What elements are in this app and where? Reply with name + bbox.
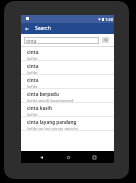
button[interactable]: cinta bbox=[21, 75, 114, 88]
staticText: cinta bbox=[27, 63, 39, 69]
button[interactable]: Back bbox=[35, 151, 47, 163]
staticText: cinta berpadu bbox=[27, 91, 59, 97]
staticText: cinta bbox=[26, 38, 37, 44]
staticText: liefde op het eerste gezicht bbox=[27, 126, 78, 130]
staticText: cinta bbox=[27, 77, 39, 83]
button[interactable]: cinta bbox=[24, 37, 99, 44]
staticText: cinta layang pandang bbox=[27, 119, 77, 125]
staticText: liefde bbox=[27, 70, 38, 74]
button[interactable]: Recent apps bbox=[88, 151, 100, 163]
staticText: cinta bbox=[27, 49, 39, 55]
staticText: Search bbox=[35, 25, 51, 32]
button[interactable]: cinta layang pandang bbox=[21, 117, 114, 130]
staticText: cinta kasih bbox=[27, 105, 52, 111]
button[interactable]: Back bbox=[21, 23, 32, 34]
button[interactable]: cinta berpadu bbox=[21, 89, 114, 102]
button[interactable]: cinta bbox=[21, 61, 114, 74]
button[interactable]: cinta bbox=[21, 47, 114, 60]
button[interactable]: Home bbox=[62, 151, 74, 163]
staticText: liefde bbox=[27, 112, 38, 116]
button[interactable]: cinta kasih bbox=[21, 103, 114, 116]
staticText: liefde wordt beantwoord bbox=[27, 98, 74, 102]
button[interactable]: Search bbox=[102, 37, 109, 43]
staticText: liefde bbox=[27, 56, 38, 60]
staticText: liefde bbox=[27, 84, 38, 88]
staticText: 1:38 bbox=[105, 17, 113, 22]
